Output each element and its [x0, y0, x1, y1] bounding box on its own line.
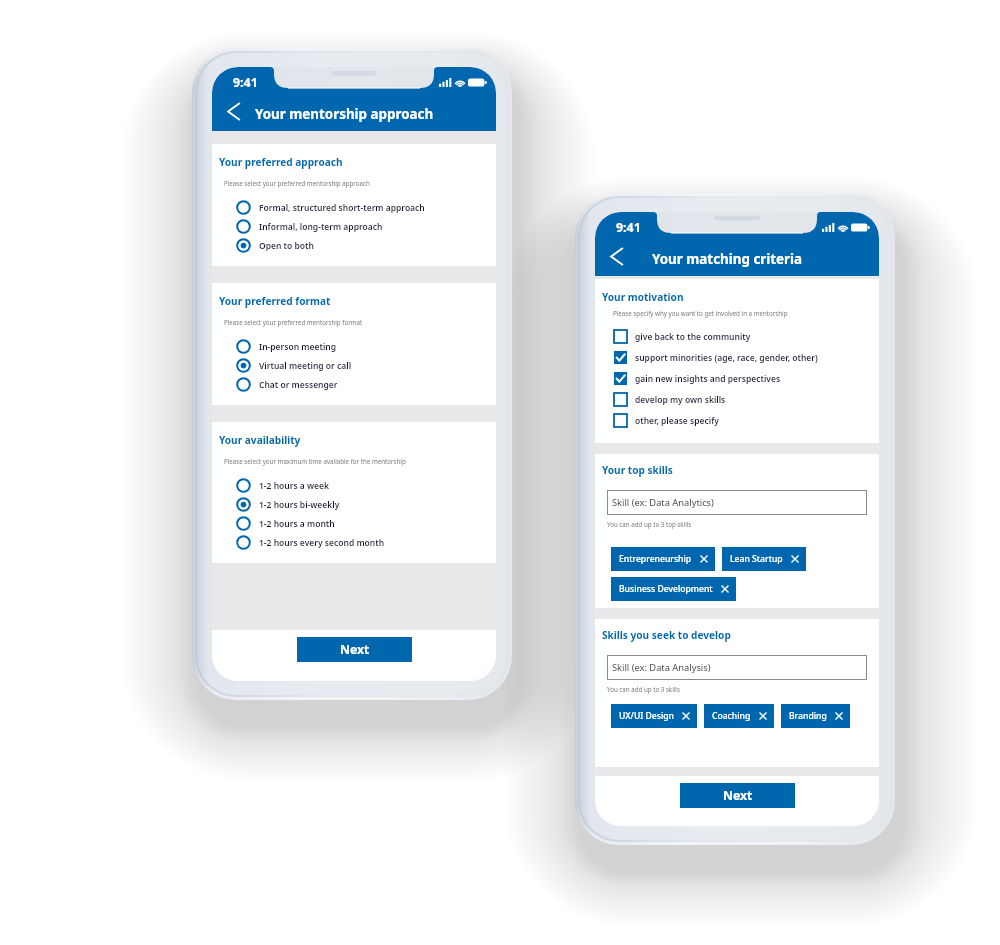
- staticText: Lean Startup: [730, 553, 783, 565]
- button[interactable]: Back: [602, 241, 632, 271]
- staticText: support minorities (age, race, gender, o…: [635, 352, 818, 364]
- staticText: Next: [723, 787, 753, 804]
- button[interactable]: Coaching: [704, 704, 774, 728]
- staticText: Next: [340, 641, 370, 658]
- button[interactable]: give back to the community: [595, 326, 879, 347]
- staticText: Informal, long-term approach: [259, 221, 383, 233]
- staticText: Your availability: [219, 433, 301, 447]
- staticText: Your mentorship approach: [255, 105, 434, 123]
- staticText: give back to the community: [635, 331, 751, 343]
- staticText: 9:41: [233, 74, 258, 91]
- staticText: Skill (ex: Data Analysis): [612, 661, 711, 674]
- staticText: gain new insights and perspectives: [635, 373, 781, 385]
- staticText: Coaching: [712, 710, 751, 722]
- staticText: Please specify why you want to get invol…: [613, 309, 788, 317]
- staticText: develop my own skills: [635, 394, 726, 406]
- button[interactable]: Chat or messenger: [212, 375, 496, 394]
- staticText: Please select your preferred mentorship …: [224, 318, 363, 326]
- staticText: Skill (ex: Data Analytics): [612, 496, 714, 509]
- staticText: Please select your maximum time availabl…: [224, 457, 406, 465]
- button[interactable]: 1-2 hours a month: [212, 514, 496, 533]
- staticText: Skills you seek to develop: [602, 628, 731, 642]
- staticText: You can add up to 3 top skills: [607, 520, 692, 528]
- staticText: Business Development: [619, 583, 713, 595]
- staticText: Chat or messenger: [259, 379, 338, 391]
- button[interactable]: Next: [680, 783, 795, 808]
- button[interactable]: 1-2 hours a week: [212, 476, 496, 495]
- staticText: Branding: [789, 710, 827, 722]
- staticText: Your preferred format: [219, 294, 331, 308]
- button[interactable]: UX/UI Design: [611, 704, 697, 728]
- staticText: Your matching criteria: [652, 250, 803, 268]
- staticText: UX/UI Design: [619, 710, 674, 722]
- button[interactable]: develop my own skills: [595, 389, 879, 410]
- staticText: 9:41: [616, 219, 641, 236]
- button[interactable]: Next: [297, 637, 412, 662]
- staticText: Your preferred approach: [219, 155, 343, 169]
- button[interactable]: Informal, long-term approach: [212, 217, 496, 236]
- button[interactable]: gain new insights and perspectives: [595, 368, 879, 389]
- button[interactable]: 1-2 hours bi-weekly: [212, 495, 496, 514]
- button[interactable]: other, please specify: [595, 410, 879, 431]
- button[interactable]: Formal, structured short-term approach: [212, 198, 496, 217]
- button[interactable]: In-person meeting: [212, 337, 496, 356]
- button[interactable]: Virtual meeting or call: [212, 356, 496, 375]
- staticText: In-person meeting: [259, 341, 337, 353]
- button[interactable]: Lean Startup: [722, 547, 806, 571]
- staticText: You can add up to 3 skills: [607, 685, 680, 693]
- button[interactable]: Back: [219, 96, 249, 126]
- button[interactable]: Entrepreneurship: [611, 547, 715, 571]
- staticText: 1-2 hours a month: [259, 518, 335, 530]
- staticText: Virtual meeting or call: [259, 360, 352, 372]
- button[interactable]: Business Development: [611, 577, 736, 601]
- staticText: Please select your preferred mentorship …: [224, 179, 370, 187]
- button[interactable]: support minorities (age, race, gender, o…: [595, 347, 879, 368]
- staticText: 1-2 hours a week: [259, 480, 330, 492]
- staticText: other, please specify: [635, 415, 720, 427]
- staticText: 1-2 hours bi-weekly: [259, 499, 340, 511]
- staticText: Your top skills: [602, 463, 673, 477]
- button[interactable]: 1-2 hours every second month: [212, 533, 496, 552]
- staticText: Formal, structured short-term approach: [259, 202, 425, 214]
- button[interactable]: Skill (ex: Data Analysis): [607, 655, 867, 680]
- button[interactable]: Branding: [781, 704, 850, 728]
- button[interactable]: Open to both: [212, 236, 496, 255]
- staticText: 1-2 hours every second month: [259, 537, 385, 549]
- button[interactable]: Skill (ex: Data Analytics): [607, 490, 867, 515]
- staticText: Your motivation: [602, 290, 684, 304]
- staticText: Open to both: [259, 240, 314, 252]
- staticText: Entrepreneurship: [619, 553, 692, 565]
